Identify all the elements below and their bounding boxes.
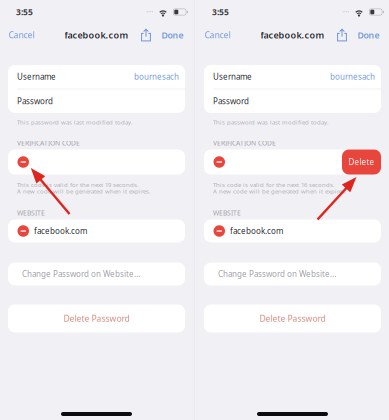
button[interactable]: Username <box>204 65 381 89</box>
staticText: Delete Password <box>63 313 129 324</box>
staticText: Cancel <box>8 29 34 41</box>
button[interactable]: Cancel <box>7 25 35 45</box>
staticText: Done <box>161 29 183 41</box>
button[interactable]: Delete <box>342 149 381 174</box>
staticText: Password <box>17 96 53 107</box>
staticText: facebook.com <box>230 226 283 236</box>
staticText: facebook.com <box>34 226 87 236</box>
staticText: A new code will be generated when it exp… <box>213 187 347 195</box>
staticText: This password was last modified today. <box>17 118 133 126</box>
button[interactable]: Remove verification code <box>204 149 231 174</box>
button[interactable]: Username <box>8 65 185 89</box>
staticText: VERIFICATION CODE <box>213 138 276 148</box>
button[interactable]: Change Password on Website… <box>8 262 185 285</box>
button[interactable]: Password <box>204 89 381 113</box>
staticText: Change Password on Website… <box>22 269 140 279</box>
staticText: Username <box>17 71 56 82</box>
staticText: WEBSITE <box>213 208 241 218</box>
button[interactable]: Share <box>336 28 347 42</box>
staticText: Cancel <box>204 29 230 41</box>
staticText: WEBSITE <box>17 208 45 218</box>
staticText: 3:55 <box>16 6 33 18</box>
button[interactable]: facebook.com <box>8 219 185 242</box>
staticText: This code is valid for the next 16 secon… <box>213 181 335 189</box>
staticText: This code is valid for the next 19 secon… <box>17 181 139 189</box>
staticText: Password <box>213 96 249 107</box>
staticText: bournesach <box>134 71 179 82</box>
button[interactable]: Delete Password <box>8 304 185 332</box>
button[interactable]: Done <box>160 25 184 45</box>
staticText: VERIFICATION CODE <box>17 138 80 148</box>
button[interactable]: Password <box>8 89 185 113</box>
staticText: facebook.com <box>64 29 128 41</box>
staticText: This password was last modified today. <box>213 118 329 126</box>
staticText: Done <box>357 29 379 41</box>
staticText: Delete <box>348 157 374 167</box>
button[interactable]: Share <box>140 28 151 42</box>
staticText: A new code will be generated when it exp… <box>17 187 151 195</box>
button[interactable]: facebook.com <box>204 219 381 242</box>
button[interactable]: Change Password on Website… <box>204 262 381 285</box>
staticText: Change Password on Website… <box>218 269 336 279</box>
button[interactable]: Delete Password <box>204 304 381 332</box>
button[interactable]: Done <box>356 25 380 45</box>
staticText: Username <box>213 71 252 82</box>
staticText: 3:55 <box>212 6 229 18</box>
button[interactable]: Cancel <box>203 25 231 45</box>
staticText: bournesach <box>330 71 375 82</box>
staticText: facebook.com <box>260 29 324 41</box>
button[interactable]: Remove verification code <box>8 149 35 174</box>
staticText: Delete Password <box>259 313 325 324</box>
